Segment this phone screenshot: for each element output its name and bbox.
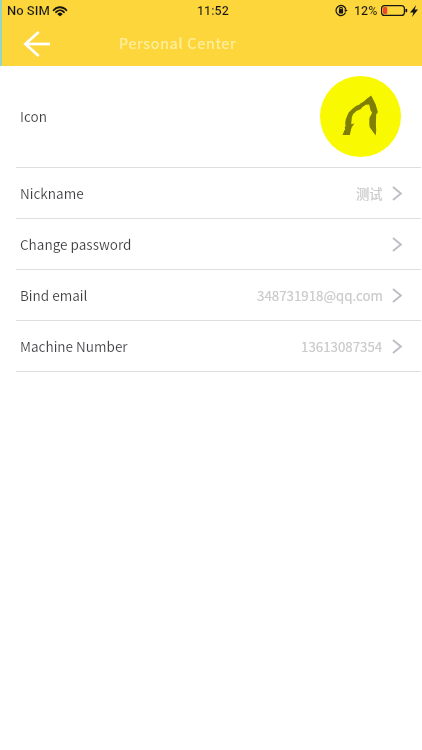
staticText: Personal Center — [119, 33, 237, 54]
staticText: Nickname — [20, 183, 84, 203]
staticText: Machine Number — [20, 336, 128, 356]
staticText: 12% — [354, 3, 378, 18]
staticText: Bind email — [20, 285, 88, 305]
staticText: Icon — [20, 106, 47, 126]
button[interactable]: Change password — [0, 219, 422, 269]
staticText: 11:52 — [197, 3, 229, 18]
staticText: Change password — [20, 234, 132, 254]
button[interactable]: Nickname — [0, 168, 422, 218]
button[interactable]: Bind email — [0, 270, 422, 320]
staticText: 13613087354 — [301, 337, 383, 356]
button[interactable]: Icon — [0, 66, 422, 167]
staticText: 测试 — [356, 184, 383, 203]
button[interactable]: Machine Number — [0, 321, 422, 371]
button[interactable]: Back — [13, 21, 62, 66]
staticText: No SIM — [7, 3, 50, 18]
staticText: 348731918@qq.com — [257, 286, 383, 305]
